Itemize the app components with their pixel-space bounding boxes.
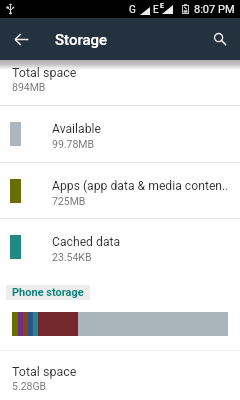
staticText: Cached data xyxy=(52,235,232,249)
staticText: 23.54KB xyxy=(52,251,92,263)
staticText: E xyxy=(160,2,164,10)
staticText: E xyxy=(153,4,159,16)
button[interactable]: Total space xyxy=(0,356,240,398)
button[interactable]: Available xyxy=(0,106,240,162)
staticText: 5.28GB xyxy=(12,380,47,392)
staticText: 8:07 PM xyxy=(194,3,235,16)
button[interactable]: Apps (app data & media conten.. xyxy=(0,163,240,218)
button[interactable]: Cached data xyxy=(0,219,240,275)
button[interactable]: Search xyxy=(203,22,237,56)
staticText: 894MB xyxy=(12,81,46,93)
button[interactable]: Navigate up xyxy=(4,22,38,56)
button[interactable]: Phone storage xyxy=(6,285,90,300)
staticText: Phone storage xyxy=(12,286,84,299)
button[interactable]: Total space xyxy=(0,57,240,99)
staticText: Storage xyxy=(55,31,108,49)
staticText: Apps (app data & media conten.. xyxy=(52,179,232,193)
staticText: Available xyxy=(52,122,232,136)
staticText: G xyxy=(129,4,136,16)
staticText: Total space xyxy=(12,65,77,80)
staticText: 725MB xyxy=(52,195,86,207)
staticText: 99.78MB xyxy=(52,138,95,150)
staticText: Total space xyxy=(12,364,77,379)
